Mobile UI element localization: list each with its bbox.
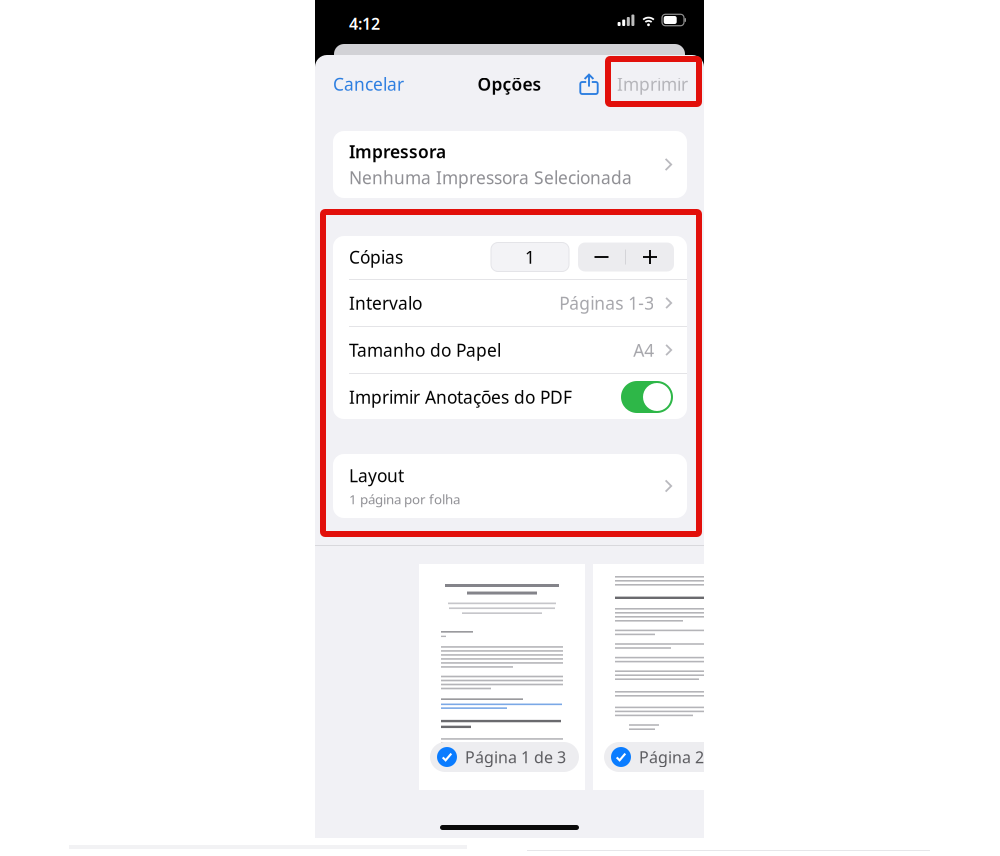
staticText: Imprimir Anotações do PDF bbox=[349, 385, 572, 408]
button[interactable]: Imprimir bbox=[607, 55, 704, 113]
staticText: A4 bbox=[633, 338, 654, 361]
staticText: Página 2 de 3 bbox=[639, 746, 740, 768]
staticText: Cópias bbox=[349, 245, 403, 268]
staticText: Layout bbox=[349, 464, 404, 487]
staticText: Página 1 de 3 bbox=[465, 746, 566, 768]
button[interactable]: Compartilhar bbox=[571, 55, 607, 113]
button[interactable]: Impressora bbox=[333, 131, 687, 198]
button[interactable]: Intervalo bbox=[333, 280, 687, 326]
staticText: Imprimir bbox=[617, 72, 688, 95]
button[interactable]: Imprimir Anotações do PDF bbox=[621, 381, 673, 413]
staticText: 4:12 bbox=[349, 13, 380, 34]
staticText: Tamanho do Papel bbox=[349, 338, 501, 361]
button[interactable]: Aumentar bbox=[626, 242, 674, 271]
staticText: Cancelar bbox=[333, 72, 404, 95]
button[interactable]: Layout bbox=[333, 454, 687, 518]
button[interactable]: Diminuir bbox=[578, 242, 625, 271]
staticText: Nenhuma Impressora Selecionada bbox=[349, 166, 632, 189]
button[interactable]: Cancelar bbox=[315, 55, 414, 113]
staticText: Intervalo bbox=[349, 291, 422, 314]
staticText: Páginas 1-3 bbox=[559, 291, 654, 314]
staticText: Impressora bbox=[349, 140, 446, 163]
staticText: 1 página por folha bbox=[349, 490, 460, 508]
staticText: Opções bbox=[477, 72, 541, 95]
button[interactable]: Tamanho do Papel bbox=[333, 327, 687, 373]
staticText: 1 bbox=[525, 245, 535, 268]
